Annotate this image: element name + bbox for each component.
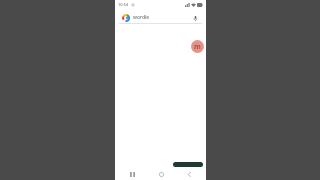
button[interactable]: Voice search [191, 14, 199, 22]
button[interactable]: Account [191, 40, 204, 53]
button[interactable]: wordle [119, 11, 202, 24]
button[interactable]: Home [150, 169, 172, 180]
staticText: wordle [133, 14, 150, 21]
staticText: 10:54 [118, 2, 129, 7]
button[interactable]: Handle [173, 162, 203, 167]
button[interactable]: Recents [121, 169, 143, 180]
button[interactable]: Back [178, 169, 200, 180]
staticText: m [194, 42, 201, 52]
